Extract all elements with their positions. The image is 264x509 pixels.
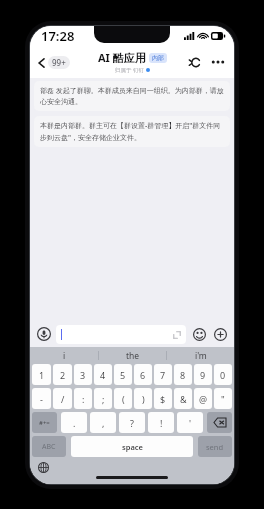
- button[interactable]: Voice input: [35, 325, 53, 343]
- button[interactable]: Change keyboard language: [35, 459, 51, 475]
- button[interactable]: i'm: [167, 347, 234, 364]
- staticText: 17:28: [41, 27, 75, 45]
- button[interactable]: ABC: [32, 436, 66, 457]
- staticText: 2: [60, 369, 66, 381]
- button[interactable]: /: [53, 388, 72, 409]
- staticText: i: [63, 350, 66, 362]
- staticText: ): [142, 393, 145, 405]
- button[interactable]: ?: [119, 412, 145, 433]
- staticText: ;: [102, 393, 105, 405]
- button[interactable]: @: [194, 388, 212, 409]
- staticText: 4: [100, 369, 106, 381]
- button[interactable]: send: [198, 436, 232, 457]
- staticText: (: [122, 393, 125, 405]
- button[interactable]: #+=: [32, 412, 57, 433]
- button[interactable]: &: [174, 388, 192, 409]
- staticText: ABC: [42, 442, 56, 452]
- button[interactable]: 9: [194, 364, 212, 385]
- button[interactable]: Call: [185, 52, 205, 72]
- staticText: AI 酷应用: [98, 50, 146, 65]
- button[interactable]: Emoji: [190, 325, 208, 343]
- staticText: 1: [39, 369, 45, 381]
- staticText: ": [221, 393, 225, 405]
- button[interactable]: $: [154, 388, 172, 409]
- button[interactable]: space: [71, 436, 193, 457]
- button[interactable]: ;: [94, 388, 112, 409]
- button[interactable]: Backspace: [207, 412, 232, 433]
- staticText: 6: [140, 369, 146, 381]
- button[interactable]: ): [134, 388, 152, 409]
- button[interactable]: 5: [114, 364, 132, 385]
- staticText: send: [206, 442, 224, 452]
- staticText: 3: [80, 369, 86, 381]
- button[interactable]: ': [177, 412, 203, 433]
- staticText: ,: [102, 417, 105, 429]
- button[interactable]: -: [32, 388, 51, 409]
- staticText: ': [189, 417, 192, 429]
- staticText: 0: [220, 369, 226, 381]
- staticText: -: [40, 393, 43, 405]
- staticText: $: [160, 393, 166, 405]
- button[interactable]: 1: [32, 364, 51, 385]
- button[interactable]: ": [214, 388, 232, 409]
- staticText: :: [82, 393, 85, 405]
- button[interactable]: 2: [53, 364, 72, 385]
- button[interactable]: 部磊 发起了群聊。本群成员来自同一组织。为内部群，请放心安全沟通。: [34, 81, 230, 111]
- button[interactable]: 7: [154, 364, 172, 385]
- button[interactable]: Back, 99+ unread: [35, 54, 72, 71]
- button[interactable]: 3: [74, 364, 92, 385]
- staticText: 归属于 钉钉: [115, 66, 144, 74]
- button[interactable]: 6: [134, 364, 152, 385]
- staticText: &: [180, 393, 187, 405]
- button[interactable]: More options: [208, 52, 228, 72]
- staticText: 部磊 发起了群聊。本群成员来自同一组织。为内部群，请放心安全沟通。: [40, 86, 224, 106]
- button[interactable]: 本群是内部群。群主可在【群设置-群管理】开启"群文件同步到云盘"，安全存储企业文…: [34, 116, 230, 147]
- staticText: the: [126, 350, 140, 362]
- staticText: /: [61, 393, 65, 405]
- staticText: #+=: [39, 419, 50, 427]
- staticText: i'm: [195, 350, 207, 362]
- button[interactable]: [56, 325, 186, 344]
- staticText: 99+: [52, 57, 66, 68]
- button[interactable]: 8: [174, 364, 192, 385]
- staticText: space: [122, 442, 143, 452]
- staticText: 5: [120, 369, 126, 381]
- staticText: @: [199, 393, 208, 405]
- button[interactable]: ,: [90, 412, 116, 433]
- button[interactable]: :: [74, 388, 92, 409]
- button[interactable]: Add attachment: [211, 325, 229, 343]
- button[interactable]: (: [114, 388, 132, 409]
- staticText: ?: [130, 417, 134, 429]
- button[interactable]: the: [99, 347, 166, 364]
- button[interactable]: .: [61, 412, 87, 433]
- button[interactable]: 0: [214, 364, 232, 385]
- staticText: 本群是内部群。群主可在【群设置-群管理】开启"群文件同步到云盘"，安全存储企业文…: [40, 121, 224, 142]
- button[interactable]: 4: [94, 364, 112, 385]
- button[interactable]: i: [30, 347, 98, 364]
- staticText: 内部: [152, 54, 164, 62]
- staticText: 8: [180, 369, 186, 381]
- staticText: !: [160, 417, 163, 429]
- button[interactable]: !: [148, 412, 174, 433]
- staticText: 9: [200, 369, 206, 381]
- staticText: 7: [160, 369, 166, 381]
- staticText: .: [73, 417, 76, 429]
